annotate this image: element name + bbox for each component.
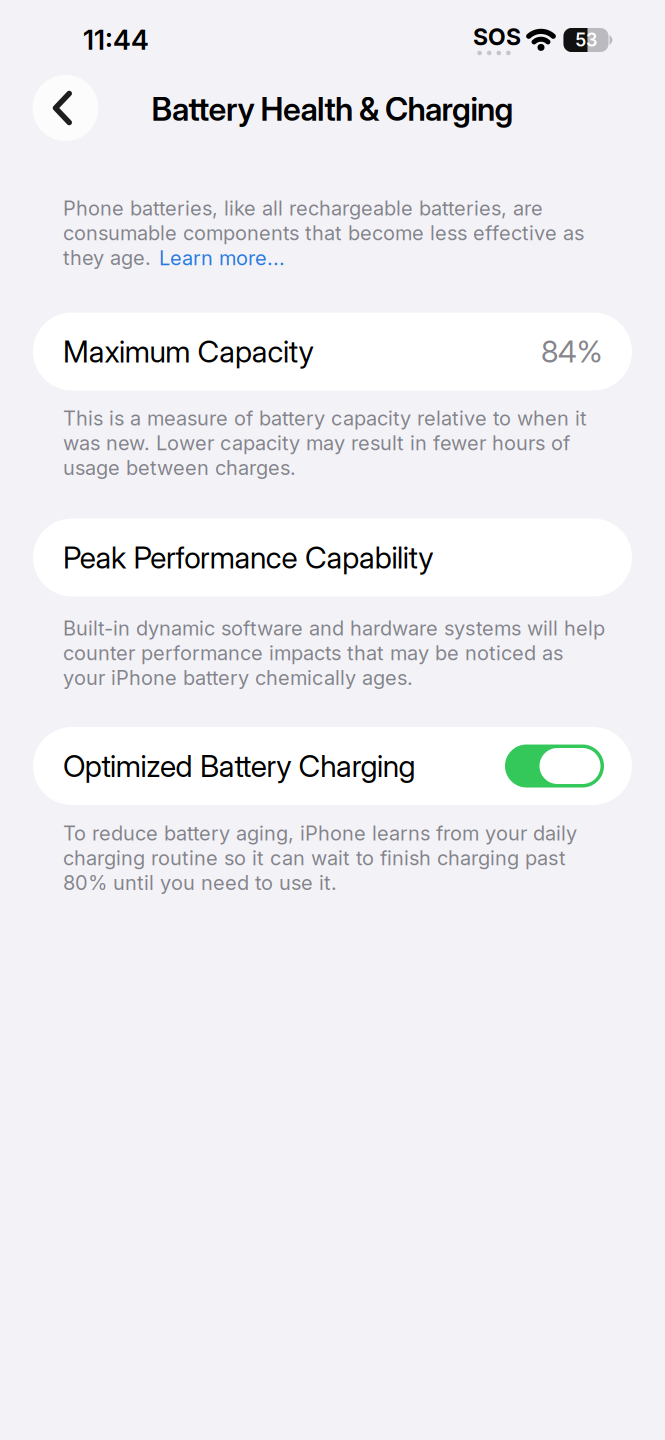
button[interactable]: Back [32, 75, 98, 141]
staticText: Battery Health & Charging [151, 90, 513, 128]
staticText: 53 [575, 29, 597, 51]
button[interactable]: Peak Performance Capability [33, 518, 632, 596]
staticText: 11:44 [83, 24, 149, 56]
staticText: Optimized Battery Charging [63, 748, 415, 784]
button[interactable]: Optimized Battery Charging [505, 744, 604, 787]
staticText: This is a measure of battery capacity re… [63, 406, 587, 480]
staticText: Maximum Capacity [63, 333, 313, 370]
button[interactable]: Learn more... [159, 246, 285, 270]
staticText: 84% [541, 333, 602, 370]
staticText: Learn more... [159, 246, 285, 270]
staticText: Peak Performance Capability [63, 539, 433, 576]
staticText: Phone batteries, like all rechargeable b… [63, 196, 584, 270]
staticText: SOS [473, 23, 521, 51]
staticText: To reduce battery aging, iPhone learns f… [63, 821, 577, 895]
staticText: Built-in dynamic software and hardware s… [63, 616, 605, 690]
